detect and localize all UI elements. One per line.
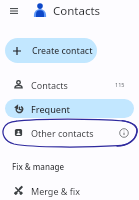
staticText: Merge & fix (31, 185, 80, 197)
staticText: Fix & manage (12, 161, 65, 172)
button[interactable]: Frequent (5, 99, 134, 118)
button[interactable]: Merge & fix (5, 181, 134, 200)
staticText: Contacts (53, 3, 101, 19)
staticText: Create contact (32, 45, 93, 57)
button[interactable]: Contacts (5, 75, 134, 94)
button[interactable]: Create contact (5, 38, 97, 63)
staticText: 115 (115, 81, 125, 88)
staticText: Frequent (31, 103, 71, 115)
button[interactable]: Open navigation drawer (8, 5, 20, 17)
staticText: Contacts (31, 79, 68, 91)
staticText: Other contacts (31, 127, 94, 139)
button[interactable]: Other contacts (5, 123, 134, 142)
button[interactable]: Account (31, 1, 48, 18)
